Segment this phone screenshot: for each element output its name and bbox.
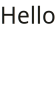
staticText: Hello bbox=[0, 0, 56, 30]
